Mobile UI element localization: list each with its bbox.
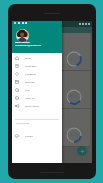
button[interactable]: Add [77, 146, 87, 156]
button[interactable]: Buy/Time [12, 109, 90, 147]
staticText: Template [25, 81, 35, 84]
button[interactable]: FAQs [12, 86, 62, 94]
staticText: Contact [25, 135, 33, 138]
staticText: 63.5% [70, 57, 78, 61]
button[interactable]: WhatPages [12, 62, 62, 70]
staticText: 53.5% [70, 133, 78, 137]
staticText: FAQs [25, 89, 31, 92]
staticText: Home [25, 57, 32, 60]
staticText: rahulawasthi@gmail.com [15, 44, 42, 47]
staticText: 52.5% [70, 95, 78, 99]
staticText: Invite Friends [25, 105, 39, 108]
button[interactable]: Home [12, 54, 62, 62]
button[interactable]: Buy Support [12, 33, 90, 71]
button[interactable]: Template [12, 78, 62, 86]
button[interactable]: Categories [12, 70, 62, 78]
staticText: Communicate [16, 122, 30, 125]
button[interactable]: About Us [12, 94, 62, 102]
staticText: Rahul Awasthi [15, 41, 30, 44]
button[interactable]: Feature Assignment [12, 71, 90, 109]
button[interactable]: Contact [12, 132, 62, 140]
staticText: Buy Support [14, 37, 30, 41]
button[interactable]: Invite Friends [12, 102, 62, 110]
staticText: Feature Assignment [14, 75, 29, 81]
staticText: About Us [25, 97, 35, 100]
staticText: Categories [25, 73, 37, 76]
staticText: WhatPages [25, 65, 37, 68]
